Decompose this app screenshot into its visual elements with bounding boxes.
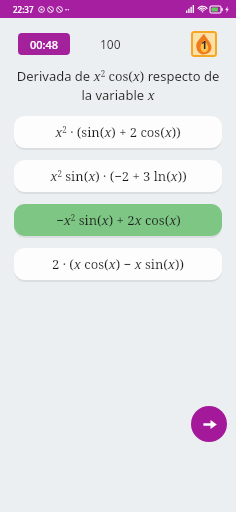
staticText: 100 xyxy=(100,36,121,52)
staticText: Derivada de x2 cos(x) respecto de la var… xyxy=(12,67,224,104)
button[interactable]: x2 · (sin(x) + 2 cos(x)) xyxy=(14,116,222,148)
staticText: x2 · (sin(x) + 2 cos(x)) xyxy=(55,123,181,141)
staticText: 22:37 xyxy=(13,4,34,15)
button[interactable]: x2 sin(x) · (−2 + 3 ln(x)) xyxy=(14,160,222,192)
button[interactable]: 2 · (x cos(x) − x sin(x)) xyxy=(14,248,222,280)
button[interactable]: −x2 sin(x) + 2x cos(x) xyxy=(14,204,222,236)
staticText: 00:48 xyxy=(30,37,59,52)
button[interactable]: Racha de aciertos xyxy=(191,31,217,57)
button[interactable]: 00:48 xyxy=(18,33,70,55)
staticText: −x2 sin(x) + 2x cos(x) xyxy=(56,211,181,229)
staticText: ·· xyxy=(65,4,70,15)
staticText: 2 · (x cos(x) − x sin(x)) xyxy=(52,255,184,273)
staticText: 1 xyxy=(201,37,208,52)
button[interactable]: Siguiente pregunta xyxy=(191,406,227,442)
staticText: x2 sin(x) · (−2 + 3 ln(x)) xyxy=(50,167,187,185)
